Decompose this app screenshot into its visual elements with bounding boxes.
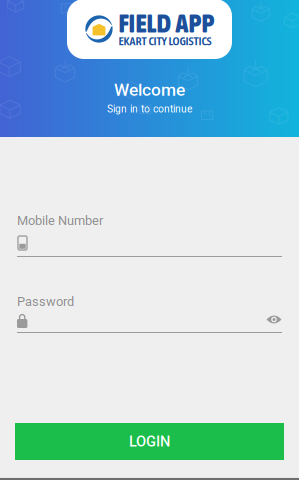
staticText: Password (17, 294, 74, 309)
staticText: FIELD APP (118, 8, 214, 38)
button[interactable]: Show password (266, 314, 282, 325)
staticText: Sign in to continue (107, 103, 192, 115)
staticText: EKART CITY LOGISTICS (118, 34, 211, 48)
staticText: LOGIN (129, 433, 170, 450)
button[interactable]: LOGIN (15, 423, 284, 460)
staticText: Welcome (114, 80, 185, 100)
staticText: Mobile Number (17, 213, 103, 228)
